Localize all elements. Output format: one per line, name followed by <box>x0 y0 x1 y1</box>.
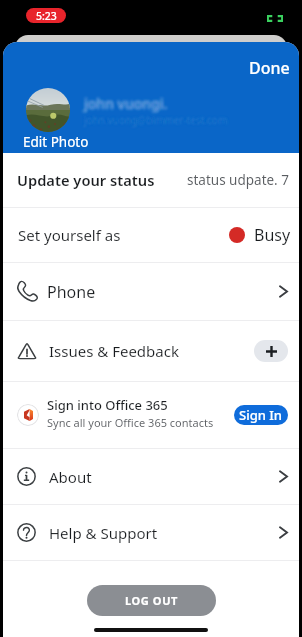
staticText: john.vuong@bimmer-test.com <box>85 114 229 128</box>
staticText: john vuongi. <box>84 91 168 110</box>
staticText: john vuongi. <box>83 94 167 113</box>
button[interactable]: Issues & Feedback <box>3 321 299 381</box>
staticText: john vuongi. <box>82 96 166 115</box>
staticText: john.vuong@bimmer-test.com <box>84 112 228 126</box>
button[interactable]: Add feedback <box>254 340 288 362</box>
staticText: john vuongi. <box>86 95 170 114</box>
staticText: john vuongi. <box>85 91 169 110</box>
button[interactable]: LOG OUT <box>87 585 216 616</box>
staticText: john.vuong@bimmer-test.com <box>85 110 229 124</box>
staticText: john.vuong@bimmer-test.com <box>82 114 226 128</box>
staticText: john.vuong@bimmer-test.com <box>86 113 230 127</box>
staticText: About <box>49 467 92 487</box>
staticText: john.vuong@bimmer-test.com <box>82 112 226 126</box>
staticText: john.vuong@bimmer-test.com <box>81 114 225 128</box>
staticText: john vuongi. <box>84 93 168 112</box>
staticText: john.vuong@bimmer-test.com <box>83 114 227 128</box>
staticText: john vuongi. <box>86 93 170 112</box>
staticText: john vuongi. <box>84 96 168 115</box>
staticText: Set yourself as <box>18 225 121 245</box>
staticText: john.vuong@bimmer-test.com <box>85 116 229 130</box>
button[interactable]: About <box>3 449 299 504</box>
staticText: john.vuong@bimmer-test.com <box>84 111 228 125</box>
staticText: john vuongi. <box>81 93 165 112</box>
staticText: Edit Photo <box>23 133 89 151</box>
button[interactable]: Help & Support <box>3 505 299 560</box>
staticText: john.vuong@bimmer-test.com <box>84 115 228 129</box>
staticText: john vuongi. <box>85 92 169 111</box>
staticText: john.vuong@bimmer-test.com <box>83 110 227 124</box>
staticText: john.vuong@bimmer-test.com <box>81 113 225 127</box>
staticText: john.vuong@bimmer-test.com <box>83 111 227 125</box>
staticText: john vuongi. <box>81 94 165 113</box>
staticText: john.vuong@bimmer-test.com <box>87 114 231 128</box>
button[interactable]: Profile photo <box>26 88 70 132</box>
button[interactable]: Sign into Office 365 <box>3 382 299 448</box>
button[interactable]: Update your status <box>3 153 299 207</box>
staticText: john vuongi. <box>82 93 166 112</box>
staticText: Done <box>249 57 290 79</box>
staticText: john vuongi. <box>86 92 170 111</box>
staticText: Phone <box>47 281 96 303</box>
staticText: john.vuong@bimmer-test.com <box>86 114 230 128</box>
staticText: john.vuong@bimmer-test.com <box>85 111 229 125</box>
other: Battery <box>267 15 283 22</box>
staticText: john vuongi. <box>85 95 169 114</box>
staticText: john.vuong@bimmer-test.com <box>87 113 231 127</box>
staticText: john.vuong@bimmer-test.com <box>84 116 228 130</box>
staticText: john.vuong@bimmer-test.com <box>86 112 230 126</box>
button[interactable]: Phone <box>3 263 299 320</box>
staticText: john vuongi. <box>86 96 170 115</box>
staticText: john.vuong@bimmer-test.com <box>82 111 226 125</box>
staticText: john.vuong@bimmer-test.com <box>84 110 228 124</box>
button[interactable]: Sign In <box>234 405 288 425</box>
staticText: john vuongi. <box>84 92 168 111</box>
staticText: john vuongi. <box>83 97 167 116</box>
staticText: john vuongi. <box>83 91 167 110</box>
staticText: john vuongi. <box>85 96 169 115</box>
staticText: john.vuong@bimmer-test.com <box>83 115 227 129</box>
staticText: john vuongi. <box>84 95 168 114</box>
staticText: john vuongi. <box>84 97 168 116</box>
staticText: john.vuong@bimmer-test.com <box>83 112 227 126</box>
staticText: john.vuong@bimmer-test.com <box>85 112 229 126</box>
staticText: Sign into Office 365 <box>47 396 168 414</box>
staticText: john vuongi. <box>83 95 167 114</box>
staticText: john.vuong@bimmer-test.com <box>85 115 229 129</box>
staticText: status udpate. 7 <box>187 171 289 189</box>
staticText: john.vuong@bimmer-test.com <box>82 115 226 129</box>
staticText: john vuongi. <box>82 94 166 113</box>
staticText: john vuongi. <box>87 93 171 112</box>
staticText: Sync all your Office 365 contacts <box>47 415 214 430</box>
staticText: Help & Support <box>49 523 158 543</box>
staticText: john vuongi. <box>86 94 170 113</box>
staticText: john vuongi. <box>87 94 171 113</box>
staticText: john vuongi. <box>83 92 167 111</box>
staticText: Busy <box>254 224 291 246</box>
staticText: john.vuong@bimmer-test.com <box>84 113 228 127</box>
staticText: john vuongi. <box>87 95 171 114</box>
staticText: john vuongi. <box>85 97 169 116</box>
staticText: john vuongi. <box>81 95 165 114</box>
staticText: Issues & Feedback <box>49 341 179 361</box>
staticText: Sign In <box>239 406 283 424</box>
button[interactable]: Done <box>243 53 296 83</box>
staticText: john vuongi. <box>83 93 167 112</box>
staticText: 5:23 <box>36 9 57 23</box>
staticText: john vuongi. <box>82 92 166 111</box>
staticText: john vuongi. <box>83 96 167 115</box>
staticText: john vuongi. <box>82 95 166 114</box>
staticText: john.vuong@bimmer-test.com <box>87 112 231 126</box>
staticText: john.vuong@bimmer-test.com <box>84 114 228 128</box>
button[interactable]: Set yourself as <box>3 208 299 262</box>
staticText: john.vuong@bimmer-test.com <box>86 111 230 125</box>
staticText: john.vuong@bimmer-test.com <box>83 113 227 127</box>
staticText: john vuongi. <box>85 94 169 113</box>
staticText: john vuongi. <box>84 94 168 113</box>
staticText: john.vuong@bimmer-test.com <box>86 115 230 129</box>
staticText: Update your status <box>17 170 155 190</box>
staticText: john.vuong@bimmer-test.com <box>82 113 226 127</box>
staticText: LOG OUT <box>125 593 179 608</box>
staticText: john.vuong@bimmer-test.com <box>83 116 227 130</box>
staticText: john.vuong@bimmer-test.com <box>85 113 229 127</box>
